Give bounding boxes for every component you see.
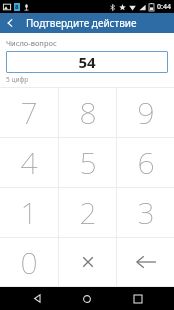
button[interactable]: 9 (117, 88, 174, 137)
staticText: 7 (20, 92, 38, 133)
staticText: 5 цифр (6, 75, 29, 84)
staticText: 54 (78, 52, 96, 72)
button[interactable]: 0 (0, 238, 58, 286)
button[interactable]: 7 (0, 88, 58, 137)
staticText: 4 (20, 142, 38, 183)
staticText: Число-вопрос (6, 38, 57, 48)
staticText: Подтвердите действие (26, 16, 137, 30)
staticText: 3 (137, 192, 155, 233)
button[interactable]: 5 (59, 138, 116, 187)
button[interactable]: Back (0, 13, 20, 33)
staticText: 0 (20, 242, 38, 283)
button[interactable]: 4 (0, 138, 58, 187)
button[interactable]: 3 (117, 188, 174, 237)
button[interactable]: 54 (6, 51, 168, 73)
staticText: 8 (79, 92, 97, 133)
button[interactable]: Back (23, 287, 51, 310)
button[interactable]: 6 (117, 138, 174, 187)
button[interactable]: Backspace (117, 238, 174, 286)
button[interactable]: Home (73, 287, 101, 310)
staticText: 9 (137, 92, 155, 133)
staticText: 2 (79, 192, 97, 233)
button[interactable]: 2 (59, 188, 116, 237)
button[interactable]: 8 (59, 88, 116, 137)
staticText: 6 (137, 142, 155, 183)
button[interactable]: 1 (0, 188, 58, 237)
button[interactable]: Clear (59, 238, 116, 286)
button[interactable]: Recent apps (124, 287, 152, 310)
staticText: 5 (79, 142, 97, 183)
staticText: 8 (15, 3, 19, 11)
staticText: 1 (20, 192, 38, 233)
staticText: 0:44 (157, 2, 171, 12)
